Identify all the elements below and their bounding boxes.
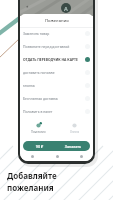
staticText: Пожелания [45, 18, 69, 24]
staticText: A [64, 5, 68, 12]
staticText: ОТДАТЬ ПЕРЕВОДЧИК НА КАРТЕ [23, 57, 85, 62]
button[interactable]: доставить попозже [20, 66, 93, 79]
button[interactable]: Оплата [56, 120, 93, 136]
staticText: Оплата [70, 130, 80, 134]
staticText: доставить попозже [23, 70, 85, 75]
button[interactable]: ОТДАТЬ ПЕРЕВОДЧИК НА КАРТЕ [20, 53, 93, 66]
staticText: Позвоните перед доставкой [23, 44, 85, 49]
button[interactable]: Search [45, 152, 69, 160]
staticText: Добавляйте [7, 170, 57, 181]
button[interactable]: Позвоните перед доставкой [20, 40, 93, 53]
button[interactable]: Положить в пакет [20, 105, 93, 118]
staticText: Бесплатная доставка [23, 96, 85, 101]
staticText: Пожелания [31, 130, 46, 134]
staticText: пожелания [7, 182, 54, 193]
button[interactable]: Home [20, 152, 45, 160]
button[interactable]: 90 ₽ [23, 141, 90, 151]
button[interactable]: Profile [69, 152, 93, 160]
staticText: Положить в пакет [23, 109, 85, 114]
button[interactable]: Пожелания [20, 120, 56, 136]
button[interactable]: Заменить товар [20, 27, 93, 40]
staticText: Заказать [56, 144, 90, 149]
staticText: кнопка [23, 83, 85, 88]
button[interactable]: Бесплатная доставка [20, 92, 93, 105]
staticText: 90 ₽ [23, 144, 56, 149]
staticText: Заменить товар [23, 31, 85, 36]
button[interactable]: кнопка [20, 79, 93, 92]
